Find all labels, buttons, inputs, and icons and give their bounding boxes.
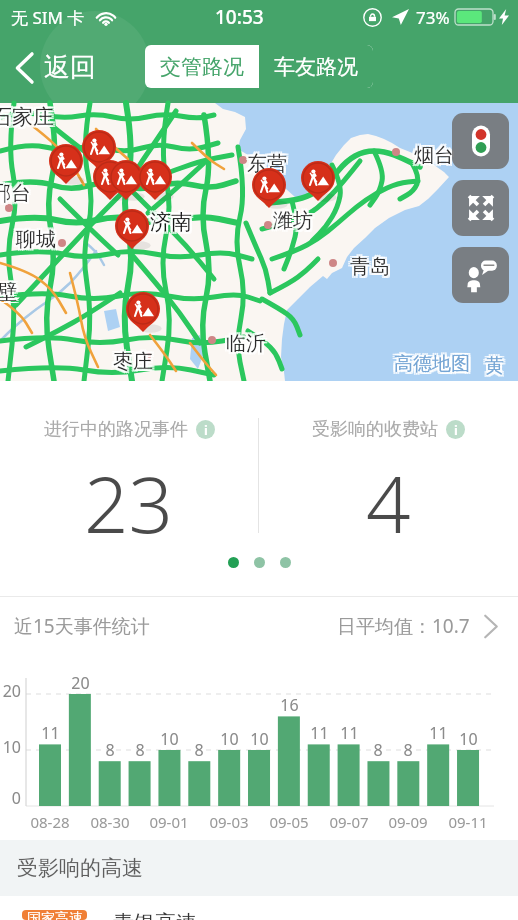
staticText: 枣庄 (113, 349, 153, 374)
staticText: 烟台 (414, 145, 454, 170)
staticText: 烟台 (412, 141, 452, 166)
staticText: 受影响的收费站 (312, 418, 438, 441)
staticText: 东营 (249, 149, 289, 174)
button[interactable]: Report incident (452, 247, 509, 303)
staticText: 济南 (150, 209, 192, 235)
staticText: 临沂 (224, 331, 264, 356)
staticText: 潍坊 (273, 208, 313, 233)
staticText: 8 (135, 739, 145, 761)
staticText: 石家庄 (0, 106, 52, 132)
staticText: 返回 (44, 51, 96, 84)
staticText: 黄 (487, 356, 506, 380)
staticText: 济南 (148, 209, 190, 235)
staticText: 壁 (0, 278, 19, 303)
staticText: 20 (2, 680, 21, 702)
staticText: 日平均值：10.7 (337, 613, 470, 639)
staticText: 09-03 (209, 812, 249, 832)
staticText: 高德地图 (392, 354, 468, 378)
staticText: 邢台 (0, 179, 29, 204)
staticText: 临沂 (226, 331, 266, 356)
staticText: 潍坊 (275, 208, 315, 233)
button[interactable]: 交管路况 (145, 45, 259, 88)
staticText: 高德地图 (394, 352, 470, 376)
staticText: 石家庄 (0, 106, 56, 132)
staticText: i (454, 421, 458, 439)
staticText: 11 (310, 722, 329, 744)
staticText: 09-07 (329, 812, 369, 832)
staticText: 东营 (247, 151, 287, 176)
staticText: 8 (194, 739, 204, 761)
button[interactable]: 近15天事件统计 (0, 597, 518, 655)
staticText: 10 (160, 728, 179, 750)
staticText: 邢台 (0, 181, 33, 206)
staticText: 09-01 (149, 812, 189, 832)
staticText: 东营 (247, 153, 287, 178)
staticText: 09-11 (448, 812, 488, 832)
staticText: 08-28 (30, 812, 70, 832)
staticText: 16 (280, 694, 299, 716)
staticText: 近15天事件统计 (14, 613, 150, 639)
staticText: 高德地图 (394, 350, 470, 374)
staticText: 石家庄 (0, 104, 52, 130)
button[interactable]: Full screen map (452, 180, 509, 236)
staticText: 车友路况 (274, 54, 358, 80)
staticText: 10 (220, 728, 239, 750)
staticText: 潍坊 (271, 206, 311, 231)
staticText: 青岛 (352, 256, 392, 281)
staticText: 11 (429, 722, 448, 744)
staticText: 烟台 (412, 145, 452, 170)
staticText: 烟台 (416, 141, 456, 166)
staticText: 东营 (249, 151, 289, 176)
staticText: 08-30 (90, 812, 130, 832)
staticText: 枣庄 (113, 347, 153, 372)
staticText: 青岛 (352, 252, 392, 277)
staticText: 潍坊 (273, 206, 313, 231)
staticText: 枣庄 (111, 351, 151, 376)
staticText: 邢台 (0, 183, 29, 208)
staticText: 黄 (483, 354, 502, 378)
staticText: 枣庄 (111, 347, 151, 372)
staticText: 东营 (245, 149, 285, 174)
staticText: 聊城 (18, 225, 58, 250)
staticText: 烟台 (412, 143, 452, 168)
staticText: 壁 (0, 282, 19, 307)
button[interactable]: 返回 (0, 0, 97, 45)
staticText: 枣庄 (115, 351, 155, 376)
staticText: 聊城 (14, 229, 54, 254)
staticText: 烟台 (414, 143, 454, 168)
staticText: 国家高速 (27, 910, 83, 920)
button[interactable]: Traffic incidents (452, 113, 509, 169)
staticText: 73% (416, 6, 450, 29)
staticText: 高德地图 (392, 350, 468, 374)
button[interactable]: 车友路况 (259, 45, 373, 88)
staticText: 聊城 (16, 227, 56, 252)
staticText: 黄 (485, 352, 504, 376)
staticText: 聊城 (18, 229, 58, 254)
button[interactable]: 国家高速 (0, 896, 518, 920)
staticText: 黄 (483, 352, 502, 376)
staticText: 东营 (249, 153, 289, 178)
staticText: 济南 (148, 207, 190, 233)
staticText: 8 (373, 739, 383, 761)
staticText: 石家庄 (0, 102, 56, 128)
staticText: 壁 (0, 280, 19, 305)
staticText: 黄 (487, 354, 506, 378)
staticText: 壁 (0, 282, 17, 307)
staticText: 聊城 (14, 225, 54, 250)
staticText: 壁 (0, 282, 15, 307)
staticText: 高德地图 (396, 352, 472, 376)
staticText: 邢台 (0, 183, 31, 208)
staticText: 青银高速 (113, 910, 197, 920)
staticText: 高德地图 (396, 350, 472, 374)
staticText: 壁 (0, 280, 15, 305)
staticText: 东营 (245, 151, 285, 176)
staticText: 邢台 (0, 181, 31, 206)
staticText: 无 SIM 卡 (11, 6, 85, 29)
staticText: 石家庄 (0, 102, 52, 128)
staticText: i (204, 421, 208, 439)
staticText: 09-09 (388, 812, 428, 832)
staticText: 聊城 (16, 225, 56, 250)
staticText: 20 (71, 672, 90, 694)
staticText: 邢台 (0, 179, 31, 204)
staticText: 济南 (152, 211, 194, 237)
